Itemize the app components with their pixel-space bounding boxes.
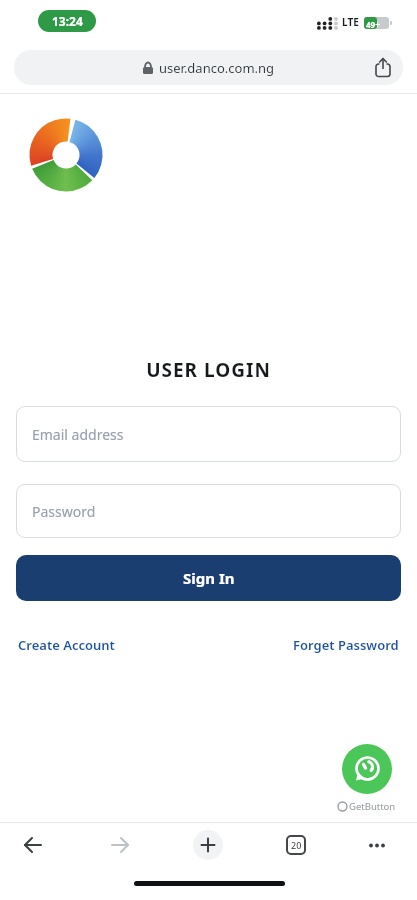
button[interactable]: Create Account (18, 636, 115, 654)
staticText: 13:24 (52, 13, 83, 29)
staticText: GetButton (349, 800, 396, 813)
button[interactable] (13, 825, 53, 865)
button[interactable] (100, 825, 140, 865)
staticText: Forget Password (293, 636, 399, 654)
staticText: USER LOGIN (0, 357, 417, 383)
staticText: user.danco.com.ng (159, 59, 275, 77)
button[interactable] (362, 830, 392, 860)
button[interactable]: 20 (286, 835, 306, 855)
button[interactable]: user.danco.com.ng (14, 50, 403, 85)
staticText: 49+ (366, 19, 380, 30)
button[interactable]: Sign In (16, 555, 401, 601)
button[interactable]: Forget Password (293, 636, 399, 654)
staticText: Password (32, 502, 96, 521)
button[interactable] (193, 830, 223, 860)
staticText: Email address (32, 425, 124, 444)
button[interactable]: Password (16, 484, 401, 538)
staticText: Create Account (18, 636, 115, 654)
button[interactable]: Email address (16, 406, 401, 462)
button[interactable] (342, 744, 392, 794)
staticText: Sign In (183, 568, 235, 588)
staticText: 20 (291, 839, 302, 851)
staticText: LTE (342, 15, 359, 29)
